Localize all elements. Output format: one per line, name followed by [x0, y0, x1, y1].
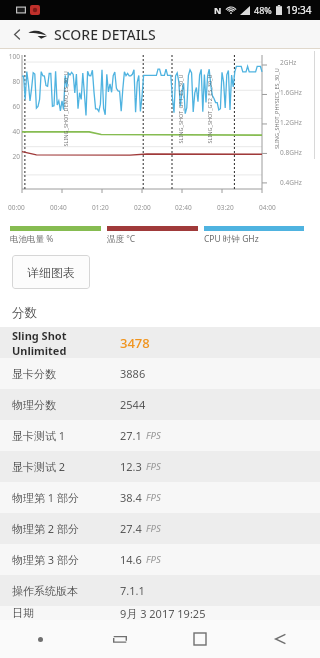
staticText: 3886 — [120, 366, 146, 381]
button[interactable]: 显卡测试 2 — [0, 451, 320, 482]
staticText: 7.1.1 — [120, 583, 145, 598]
staticText: 20 — [2, 152, 20, 161]
button[interactable]: 显卡分数 — [0, 358, 320, 389]
staticText: 19:34 — [286, 3, 312, 17]
button[interactable]: Sling Shot Unlimited — [0, 327, 320, 358]
staticText: 物理第 1 部分 — [12, 490, 120, 505]
staticText: FPS — [146, 522, 161, 535]
staticText: 80 — [2, 77, 20, 86]
staticText: 0.8GHz — [280, 148, 318, 157]
staticText: 38.4 — [120, 490, 142, 505]
staticText: SLING_SHOT_DEMO_ES_30_U — [61, 70, 68, 146]
button[interactable]: 物理第 3 部分 — [0, 544, 320, 575]
staticText: 物理分数 — [12, 398, 120, 412]
staticText: 48% — [254, 4, 272, 16]
button[interactable]: 物理分数 — [0, 389, 320, 420]
button[interactable]: 日期 — [0, 606, 320, 620]
staticText: 1.2GHz — [280, 118, 318, 127]
button[interactable]: 物理第 1 部分 — [0, 482, 320, 513]
staticText: 40 — [2, 127, 20, 136]
staticText: SCORE DETAILS — [54, 25, 156, 44]
staticText: 显卡测试 1 — [12, 428, 120, 443]
staticText: 1.6GHz — [280, 88, 318, 97]
staticText: FPS — [146, 429, 161, 442]
staticText: SLING_SHOT_GT1_ES_30_U — [176, 73, 183, 143]
staticText: 2GHz — [280, 58, 318, 67]
staticText: 日期 — [12, 606, 120, 620]
staticText: 00:40 — [50, 203, 67, 212]
staticText: FPS — [146, 491, 161, 504]
staticText: 操作系统版本 — [12, 584, 120, 598]
staticText: 物理第 3 部分 — [12, 552, 120, 567]
staticText: 显卡分数 — [12, 367, 120, 381]
button[interactable]: 显卡测试 1 — [0, 420, 320, 451]
staticText: 3478 — [120, 334, 150, 352]
button[interactable]: Recent apps — [80, 620, 160, 658]
staticText: 27.4 — [120, 521, 142, 536]
staticText: N — [214, 4, 222, 16]
button[interactable]: Home — [160, 620, 240, 658]
staticText: 100 — [2, 52, 20, 61]
staticText: 27.1 — [120, 428, 142, 443]
button[interactable]: Back — [240, 620, 320, 658]
staticText: 分数 — [12, 305, 37, 321]
staticText: SLING_SHOT_PHYSICS_ES_30_U — [273, 68, 280, 149]
staticText: SLING_SHOT_GT2_ES_30_U — [205, 73, 212, 143]
staticText: 2544 — [120, 397, 146, 412]
button[interactable]: 操作系统版本 — [0, 575, 320, 606]
staticText: 02:40 — [175, 203, 192, 212]
staticText: 02:00 — [134, 203, 151, 212]
button[interactable]: 物理第 2 部分 — [0, 513, 320, 544]
button[interactable]: Menu dot — [0, 620, 80, 658]
staticText: 温度 °C — [107, 233, 136, 245]
staticText: 详细图表 — [27, 265, 75, 280]
staticText: 0.4GHz — [280, 178, 318, 187]
staticText: 03:20 — [217, 203, 234, 212]
staticText: 01:20 — [92, 203, 109, 212]
staticText: FPS — [146, 460, 161, 473]
button[interactable]: Back — [6, 23, 28, 45]
staticText: 00:00 — [8, 203, 25, 212]
staticText: 电池电量 % — [10, 233, 54, 245]
button[interactable]: 详细图表 — [12, 255, 90, 289]
staticText: 14.6 — [120, 552, 142, 567]
staticText: CPU 时钟 GHz — [204, 233, 259, 245]
staticText: 显卡测试 2 — [12, 459, 120, 474]
staticText: 物理第 2 部分 — [12, 521, 120, 536]
staticText: 12.3 — [120, 459, 142, 474]
staticText: Sling Shot Unlimited — [12, 328, 120, 358]
staticText: 60 — [2, 102, 20, 111]
staticText: FPS — [146, 553, 161, 566]
staticText: 9月 3 2017 19:25 — [120, 606, 206, 620]
staticText: 04:00 — [259, 203, 276, 212]
